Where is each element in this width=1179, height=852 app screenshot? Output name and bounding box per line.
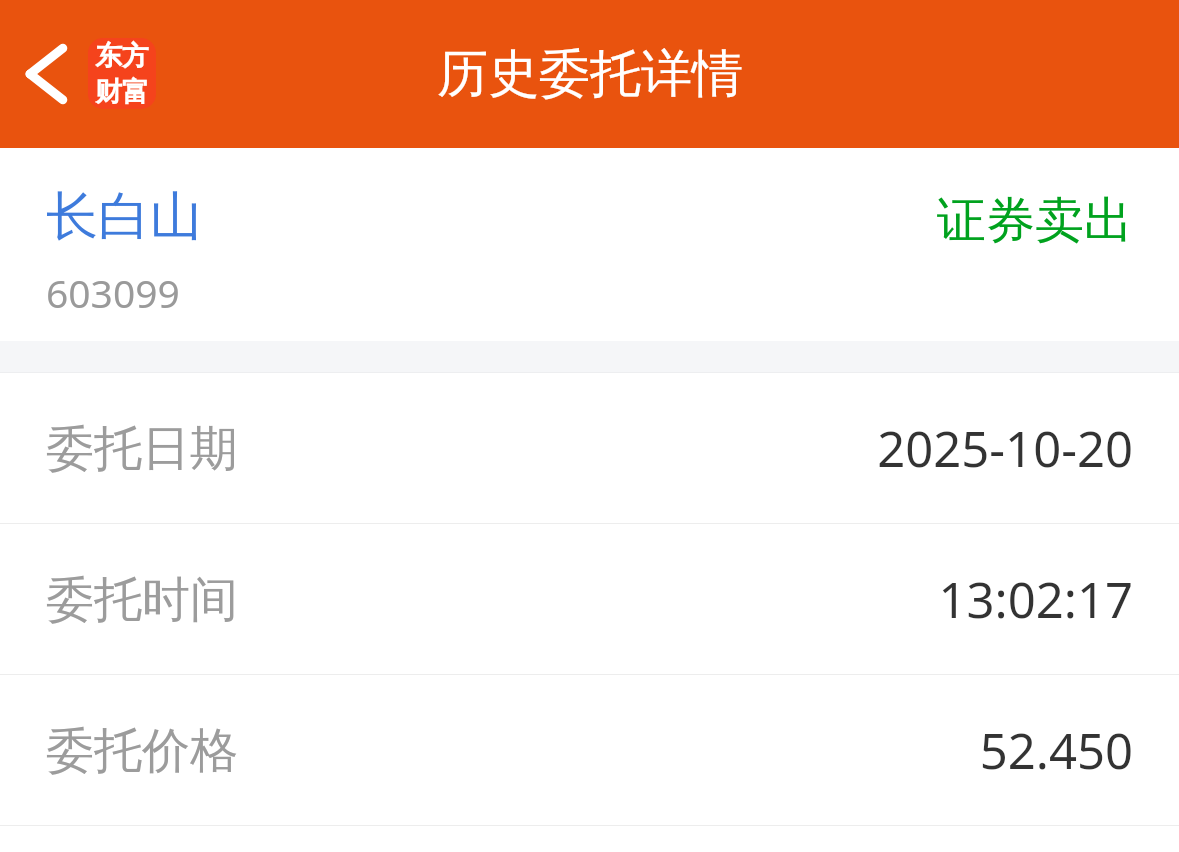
staticText: 13:02:17 xyxy=(938,566,1133,633)
staticText: 委托时间 xyxy=(46,570,238,630)
button[interactable]: 委托日期 xyxy=(0,373,1179,523)
staticText: 财富 xyxy=(95,75,149,109)
staticText: 东方 xyxy=(95,39,149,73)
staticText: 603099 xyxy=(46,266,180,319)
button[interactable]: 长白山 xyxy=(0,148,1179,341)
staticText: 证券卖出 xyxy=(937,190,1133,252)
staticText: 委托价格 xyxy=(46,721,238,781)
button[interactable]: Back xyxy=(8,36,84,112)
staticText: 52.450 xyxy=(979,717,1133,784)
button[interactable]: 委托价格 xyxy=(0,675,1179,825)
staticText: 历史委托详情 xyxy=(437,42,743,106)
staticText: 委托日期 xyxy=(46,419,238,479)
staticText: 2025-10-20 xyxy=(877,415,1133,482)
button[interactable]: 委托时间 xyxy=(0,524,1179,674)
button[interactable]: East Money logo xyxy=(88,38,156,109)
staticText: 长白山 xyxy=(46,184,202,250)
